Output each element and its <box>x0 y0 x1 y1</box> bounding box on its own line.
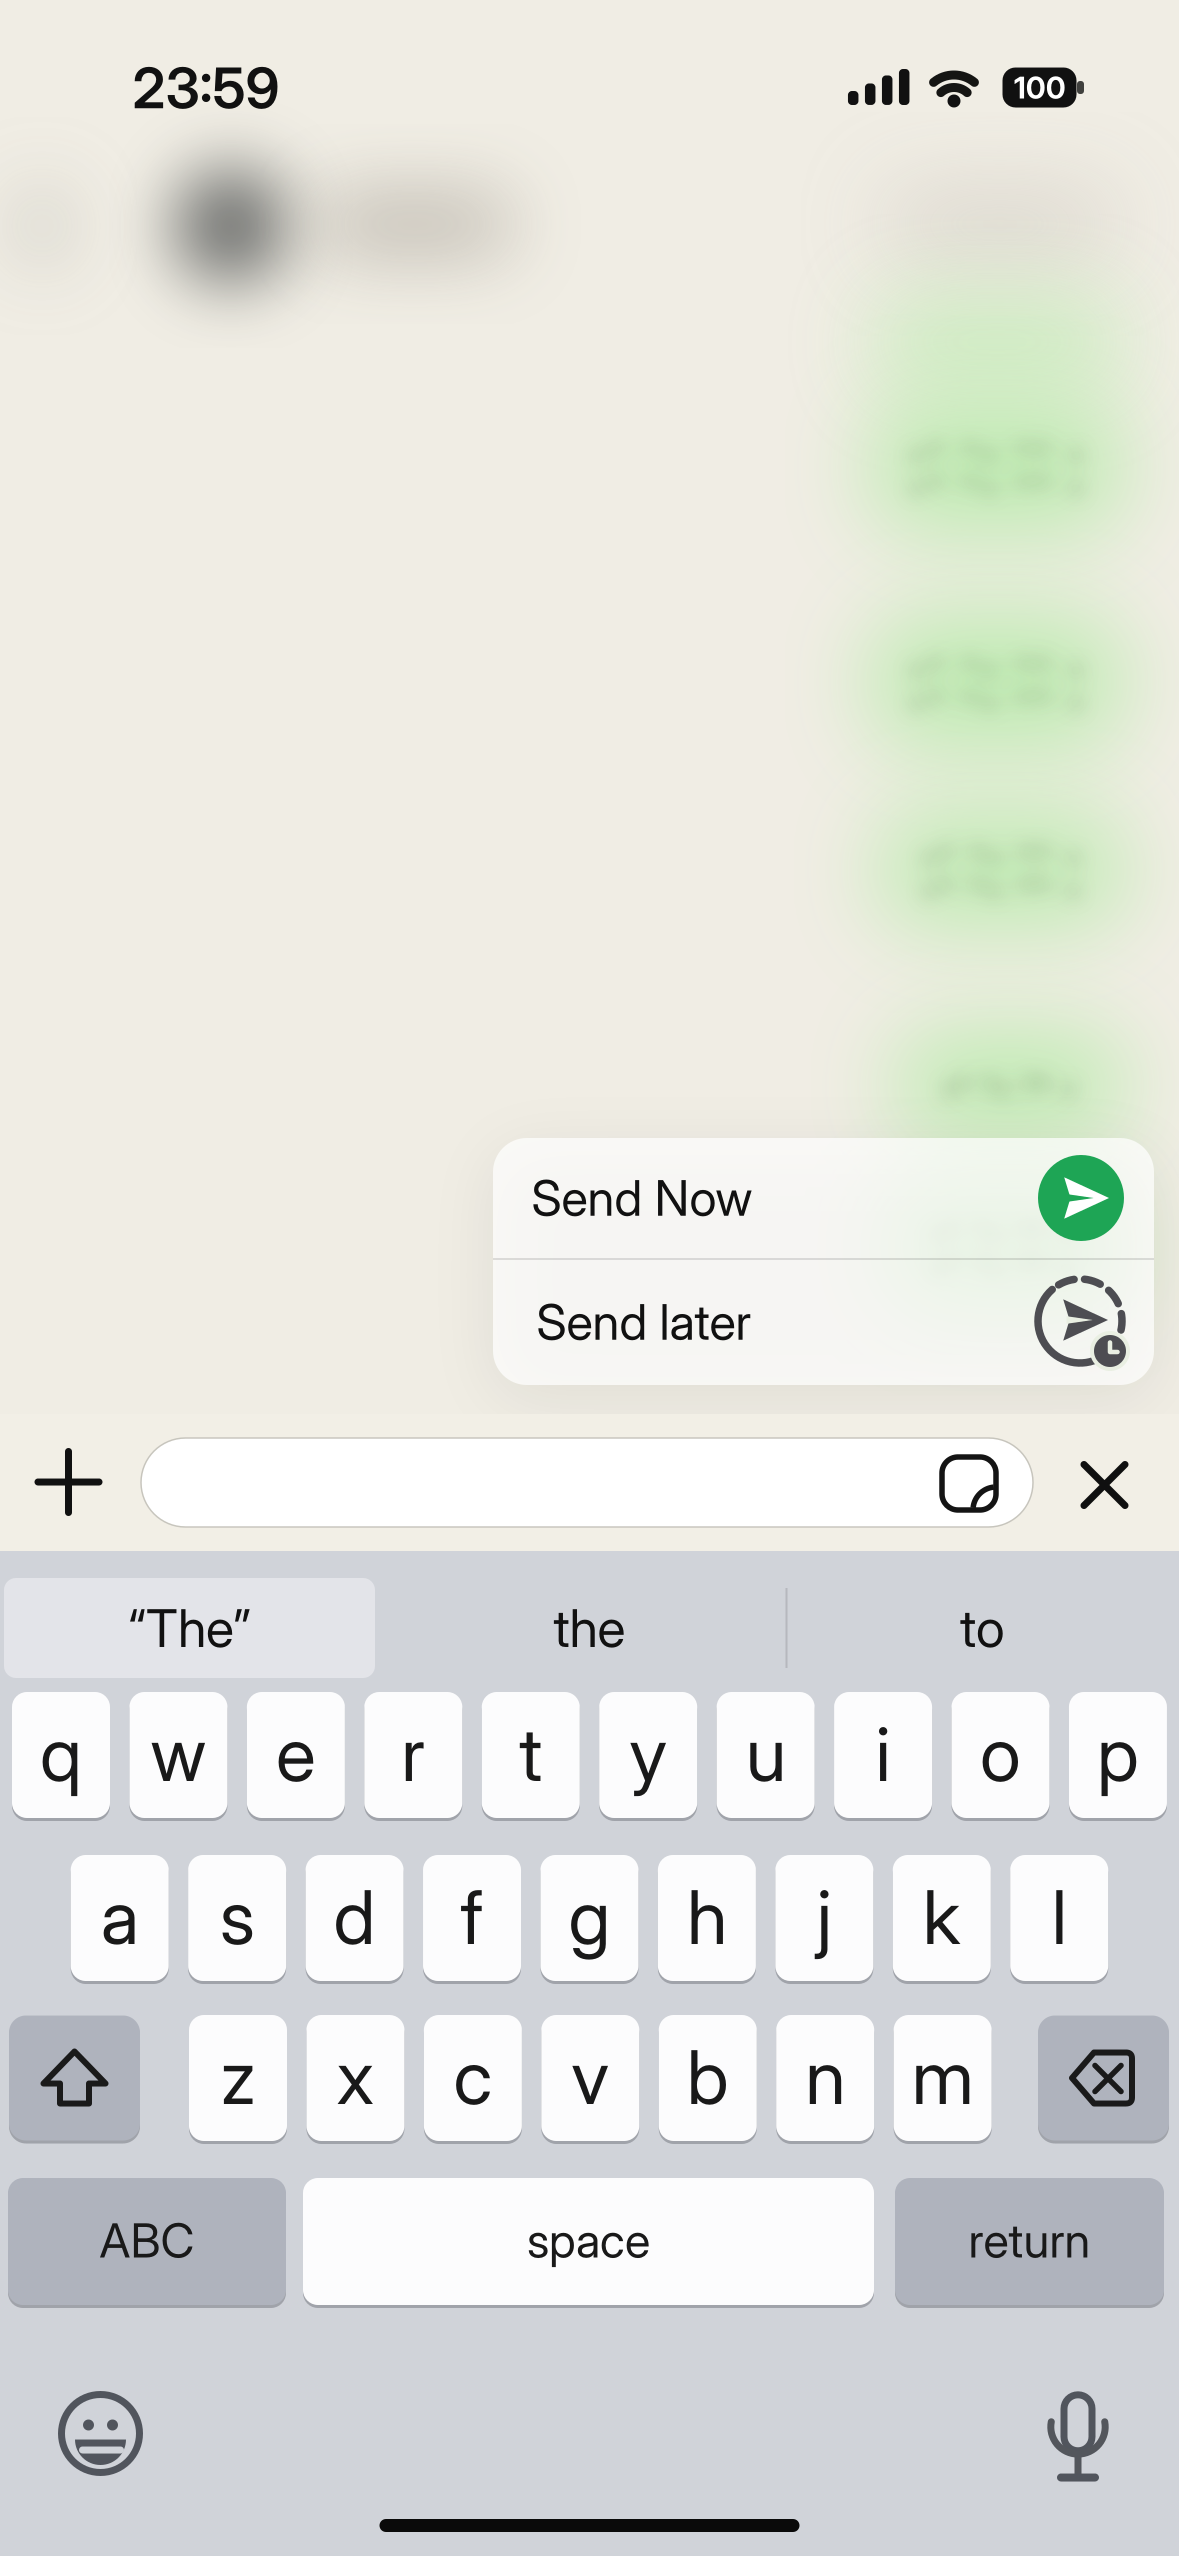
button[interactable]: Send Now <box>493 1138 1154 1258</box>
button[interactable]: d <box>306 1855 404 1981</box>
button[interactable]: u <box>717 1692 815 1818</box>
button[interactable]: Dictate <box>1034 2391 1122 2485</box>
button[interactable]: Shift <box>9 2015 140 2140</box>
button[interactable]: l <box>1010 1855 1108 1981</box>
staticText: Send later <box>536 1292 751 1352</box>
staticText: n <box>805 2032 845 2122</box>
button[interactable]: Send later <box>493 1260 1154 1385</box>
staticText: l <box>1052 1872 1067 1962</box>
button[interactable]: v <box>541 2015 639 2141</box>
button[interactable]: z <box>189 2015 287 2141</box>
staticText: k <box>923 1872 961 1962</box>
button[interactable]: f <box>423 1855 521 1981</box>
button[interactable]: ABC <box>8 2178 286 2305</box>
button[interactable]: e <box>247 1692 345 1818</box>
button[interactable]: c <box>424 2015 522 2141</box>
staticText: the <box>553 1596 625 1659</box>
staticText: i <box>876 1709 891 1799</box>
staticText: Send Now <box>531 1168 752 1228</box>
staticText: t <box>519 1709 542 1799</box>
staticText: v <box>571 2032 609 2122</box>
staticText: y <box>629 1709 667 1799</box>
button[interactable]: “The” <box>4 1578 375 1678</box>
staticText: u <box>746 1709 786 1799</box>
button[interactable]: Attach <box>28 1442 108 1522</box>
staticText: q <box>40 1709 82 1799</box>
staticText: “The” <box>128 1596 251 1659</box>
staticText: to <box>960 1596 1005 1659</box>
button[interactable]: Close <box>1074 1455 1134 1515</box>
button[interactable]: r <box>364 1692 462 1818</box>
button[interactable]: x <box>306 2015 404 2141</box>
staticText: 100 <box>1014 69 1066 106</box>
button[interactable]: return <box>895 2178 1164 2305</box>
button[interactable]: k <box>893 1855 991 1981</box>
staticText: f <box>460 1872 483 1962</box>
button[interactable]: Message <box>141 1438 1033 1527</box>
button[interactable]: the <box>439 1578 739 1678</box>
staticText: return <box>968 2212 1090 2269</box>
button[interactable]: y <box>599 1692 697 1818</box>
staticText: r <box>401 1709 425 1799</box>
button[interactable]: Delete <box>1038 2015 1169 2140</box>
button[interactable]: g <box>540 1855 638 1981</box>
staticText: d <box>334 1872 376 1962</box>
button[interactable]: w <box>129 1692 227 1818</box>
button[interactable]: n <box>776 2015 874 2141</box>
button[interactable]: Emoji <box>61 2394 139 2472</box>
staticText: g <box>568 1872 610 1962</box>
staticText: ABC <box>99 2212 194 2269</box>
staticText: j <box>817 1872 832 1962</box>
staticText: s <box>220 1872 255 1962</box>
button[interactable]: to <box>832 1578 1132 1678</box>
staticText: h <box>687 1872 727 1962</box>
staticText: m <box>912 2032 974 2122</box>
button[interactable]: a <box>71 1855 169 1981</box>
staticText: p <box>1097 1709 1139 1799</box>
button[interactable]: t <box>482 1692 580 1818</box>
staticText: b <box>687 2032 729 2122</box>
staticText: 23:59 <box>132 54 279 122</box>
button[interactable]: s <box>188 1855 286 1981</box>
staticText: a <box>101 1872 139 1962</box>
staticText: c <box>453 2032 492 2122</box>
button[interactable]: h <box>658 1855 756 1981</box>
button[interactable]: b <box>659 2015 757 2141</box>
staticText: z <box>220 2032 255 2122</box>
button[interactable]: i <box>834 1692 932 1818</box>
staticText: w <box>150 1709 206 1799</box>
button[interactable]: p <box>1069 1692 1167 1818</box>
staticText: e <box>276 1709 316 1799</box>
button[interactable]: q <box>12 1692 110 1818</box>
staticText: space <box>527 2212 650 2269</box>
button[interactable]: j <box>775 1855 873 1981</box>
staticText: o <box>980 1709 1021 1799</box>
button[interactable]: Stickers <box>936 1451 1000 1515</box>
button[interactable]: space <box>303 2178 874 2305</box>
staticText: x <box>336 2032 374 2122</box>
button[interactable]: m <box>894 2015 992 2141</box>
button[interactable]: o <box>951 1692 1049 1818</box>
